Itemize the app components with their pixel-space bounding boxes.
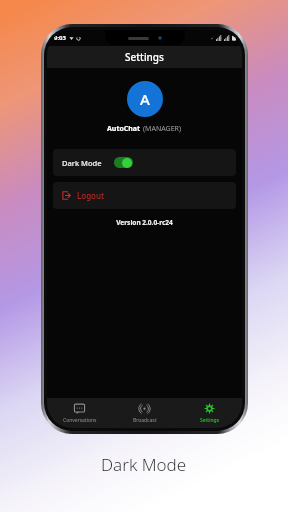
staticText: Settings	[200, 417, 220, 424]
staticText: A	[140, 89, 150, 109]
staticText: AutoChat	[107, 124, 141, 134]
button[interactable]: Broadcast	[112, 398, 177, 428]
button[interactable]: Logout	[53, 182, 236, 209]
staticText: Conversations	[63, 417, 97, 424]
staticText: Settings	[125, 50, 164, 64]
staticText: (MANAGER)	[143, 124, 182, 134]
button[interactable]: Dark Mode toggle	[114, 157, 133, 168]
staticText: Broadcast	[133, 417, 157, 424]
button[interactable]: Conversations	[47, 398, 112, 428]
button[interactable]: Dark Mode	[53, 149, 236, 176]
staticText: Dark Mode	[101, 453, 187, 476]
staticText: Version 2.0.0-rc24	[47, 218, 242, 227]
staticText: Dark Mode	[62, 158, 102, 168]
staticText: 9:03	[54, 34, 66, 42]
button[interactable]: Settings	[177, 398, 242, 428]
staticText: Logout	[77, 190, 105, 201]
